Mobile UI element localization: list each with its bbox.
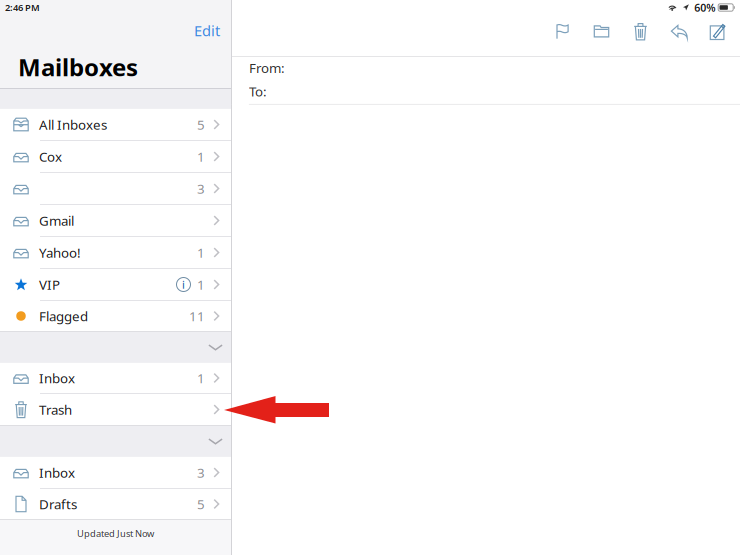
button[interactable]: Reply [660,16,699,46]
button[interactable]: Yahoo! [0,237,231,269]
button[interactable]: Gmail [0,205,231,237]
staticText: 60% [694,0,715,15]
staticText: 1 [197,244,205,261]
staticText: 5 [197,495,205,513]
staticText: Flagged [39,307,88,325]
staticText: All Inboxes [39,116,107,133]
button[interactable]: Trash [0,394,231,426]
button[interactable]: Edit [194,16,231,45]
staticText: 11 [189,307,205,325]
staticText: Inbox [39,464,75,481]
staticText: 3 [197,180,205,197]
staticText: From: [249,59,285,77]
button[interactable]: VIP [0,269,231,301]
staticText: VIP [39,276,60,293]
staticText: 1 [197,369,205,387]
button[interactable]: All Inboxes [0,109,231,141]
staticText: Updated Just Now [77,527,154,540]
staticText: i [182,277,185,292]
button[interactable]: 3 [0,173,231,205]
button[interactable]: Inbox [0,363,231,394]
button[interactable]: Flag [543,16,582,46]
button[interactable]: Cox [0,141,231,173]
button[interactable]: Collapse section [0,426,231,457]
staticText: Mailboxes [18,51,138,83]
staticText: 1 [197,276,205,293]
staticText: 3 [197,464,205,481]
button[interactable]: Move to folder [582,16,621,46]
staticText: Edit [194,21,220,40]
staticText: Yahoo! [39,244,81,261]
button[interactable]: Drafts [0,489,231,520]
button[interactable]: Flagged [0,301,231,332]
button[interactable]: Delete [621,16,660,46]
staticText: To: [249,82,267,100]
staticText: Gmail [39,212,74,229]
staticText: 2:46 PM [5,1,40,14]
button[interactable]: Compose [699,16,738,46]
staticText: Inbox [39,369,75,387]
button[interactable]: Inbox [0,457,231,489]
staticText: 1 [197,148,205,165]
button[interactable]: Collapse section [0,332,231,363]
staticText: 5 [197,116,205,133]
staticText: Cox [39,148,62,165]
staticText: Drafts [39,495,77,513]
staticText: Trash [39,401,72,418]
